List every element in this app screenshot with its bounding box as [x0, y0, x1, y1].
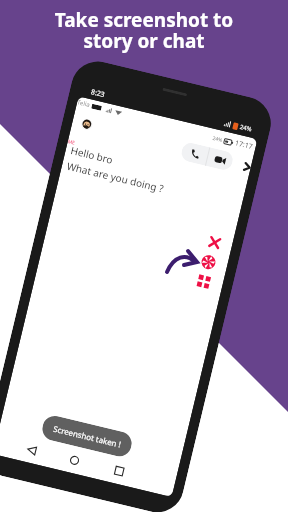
button[interactable]: Video call — [206, 147, 235, 172]
button[interactable]: Call — [180, 141, 209, 166]
staticText: What are you doing ? — [65, 159, 166, 196]
button[interactable]: Gallery — [197, 274, 211, 289]
button[interactable]: Home — [68, 454, 81, 466]
staticText: 24% — [239, 123, 252, 133]
button[interactable]: More — [240, 159, 252, 173]
staticText: 8:23 — [90, 87, 106, 100]
button[interactable]: Back — [26, 444, 38, 456]
staticText: ME — [67, 138, 76, 147]
staticText: Telia — [76, 98, 91, 109]
staticText: 17:17 — [234, 138, 254, 152]
staticText: 24% — [212, 135, 223, 144]
staticText: Take screenshot to story or chat — [0, 7, 288, 54]
staticText: Screenshot taken ! — [52, 423, 123, 450]
button[interactable]: Close — [208, 236, 221, 249]
button[interactable]: Recents — [113, 465, 125, 477]
button[interactable]: Capture screenshot — [200, 254, 217, 271]
staticText: Hello bro — [69, 143, 114, 167]
